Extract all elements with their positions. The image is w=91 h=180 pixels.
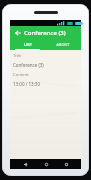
button[interactable]: LIST (10, 39, 45, 50)
button[interactable]: Content (13, 72, 78, 78)
staticText: Content (13, 72, 29, 78)
button[interactable]: Title (13, 53, 78, 59)
staticText: ABOUT (56, 42, 70, 47)
button[interactable]: Navigate up (12, 27, 23, 38)
button[interactable]: Recents (61, 159, 71, 169)
button[interactable]: Back (20, 159, 30, 169)
button[interactable]: Home (41, 159, 51, 169)
staticText: LIST (24, 42, 32, 47)
staticText: Conference (3) (24, 29, 66, 37)
button[interactable]: Conference (3) (13, 62, 78, 68)
staticText: Title (13, 53, 22, 59)
button[interactable]: ABOUT (45, 39, 81, 50)
staticText: Conference (3) (13, 62, 44, 68)
button[interactable]: 13:00 / 13:30 (13, 81, 78, 87)
staticText: 13:00 / 13:30 (13, 81, 41, 87)
